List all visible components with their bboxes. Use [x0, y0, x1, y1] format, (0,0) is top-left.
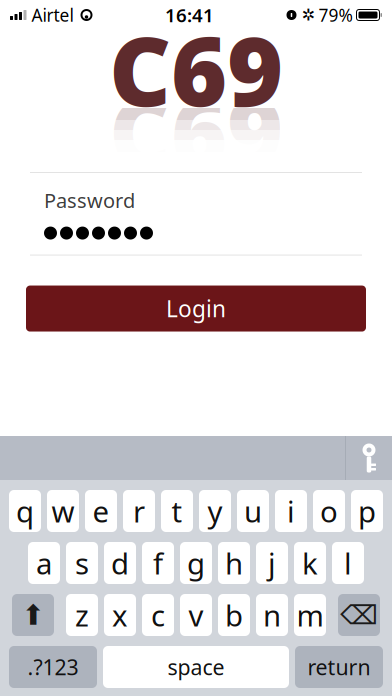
staticText: i — [287, 491, 295, 530]
button[interactable]: e — [85, 490, 117, 532]
staticText: ✲ — [301, 6, 314, 24]
button[interactable]: space — [103, 646, 289, 688]
staticText: t — [171, 491, 182, 530]
button[interactable]: Delete — [338, 594, 380, 636]
staticText: r — [133, 491, 145, 530]
staticText: l — [344, 543, 352, 582]
button[interactable]: d — [104, 542, 136, 584]
button[interactable]: u — [237, 490, 269, 532]
button[interactable]: n — [256, 594, 288, 636]
staticText: k — [302, 543, 318, 582]
staticText: Airtel — [31, 3, 73, 26]
button[interactable]: r — [123, 490, 155, 532]
button[interactable]: s — [66, 542, 98, 584]
button[interactable]: a — [28, 542, 60, 584]
button[interactable]: o — [313, 490, 345, 532]
button[interactable]: f — [142, 542, 174, 584]
button[interactable]: x — [104, 594, 136, 636]
button[interactable]: j — [256, 542, 288, 584]
staticText: return — [307, 653, 370, 681]
button[interactable]: .?123 — [9, 646, 97, 688]
staticText: j — [268, 543, 276, 582]
staticText: ⬆ — [21, 599, 44, 631]
staticText: e — [92, 491, 109, 530]
button[interactable]: h — [218, 542, 250, 584]
staticText: 79% — [318, 3, 352, 26]
staticText: C69 — [109, 5, 283, 133]
staticText: c — [151, 595, 165, 634]
button[interactable]: t — [161, 490, 193, 532]
staticText: Login — [166, 293, 226, 324]
staticText: C69 — [109, 66, 283, 194]
button[interactable]: b — [218, 594, 250, 636]
button[interactable]: y — [199, 490, 231, 532]
staticText: z — [75, 595, 89, 634]
staticText: v — [188, 595, 203, 634]
button[interactable]: m — [294, 594, 326, 636]
staticText: s — [75, 543, 89, 582]
button[interactable]: k — [294, 542, 326, 584]
button[interactable]: l — [332, 542, 364, 584]
button[interactable]: v — [180, 594, 212, 636]
staticText: y — [207, 491, 222, 530]
staticText: q — [16, 491, 34, 530]
staticText: w — [51, 491, 74, 530]
button[interactable]: Login — [26, 286, 366, 332]
staticText: a — [36, 543, 52, 582]
staticText: d — [111, 543, 129, 582]
staticText: space — [167, 653, 224, 681]
staticText: ⌫ — [340, 600, 378, 630]
staticText: b — [225, 595, 243, 634]
staticText: o — [320, 491, 338, 530]
staticText: n — [263, 595, 281, 634]
button[interactable]: Shift — [12, 594, 54, 636]
staticText: m — [296, 595, 323, 634]
staticText: f — [153, 543, 163, 582]
button[interactable]: Passwords — [346, 436, 392, 480]
staticText: Password — [44, 187, 135, 214]
button[interactable]: c — [142, 594, 174, 636]
button[interactable]: g — [180, 542, 212, 584]
button[interactable]: p — [351, 490, 383, 532]
button[interactable]: z — [66, 594, 98, 636]
staticText: h — [225, 543, 243, 582]
button[interactable]: i — [275, 490, 307, 532]
staticText: g — [187, 543, 205, 582]
staticText: p — [358, 491, 376, 530]
staticText: u — [244, 491, 262, 530]
staticText: 16:41 — [165, 3, 214, 27]
button[interactable]: return — [295, 646, 383, 688]
button[interactable]: w — [47, 490, 79, 532]
button[interactable]: q — [9, 490, 41, 532]
staticText: .?123 — [27, 653, 78, 681]
staticText: x — [112, 595, 128, 634]
